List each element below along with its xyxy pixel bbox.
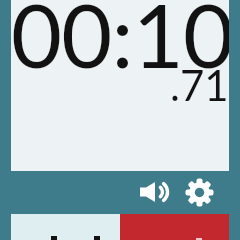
button[interactable] xyxy=(134,176,170,208)
button[interactable] xyxy=(185,178,214,207)
button[interactable] xyxy=(120,214,229,240)
staticText: .71 xyxy=(170,60,229,110)
button[interactable] xyxy=(11,214,120,240)
staticText: 00:10 xyxy=(11,0,229,87)
